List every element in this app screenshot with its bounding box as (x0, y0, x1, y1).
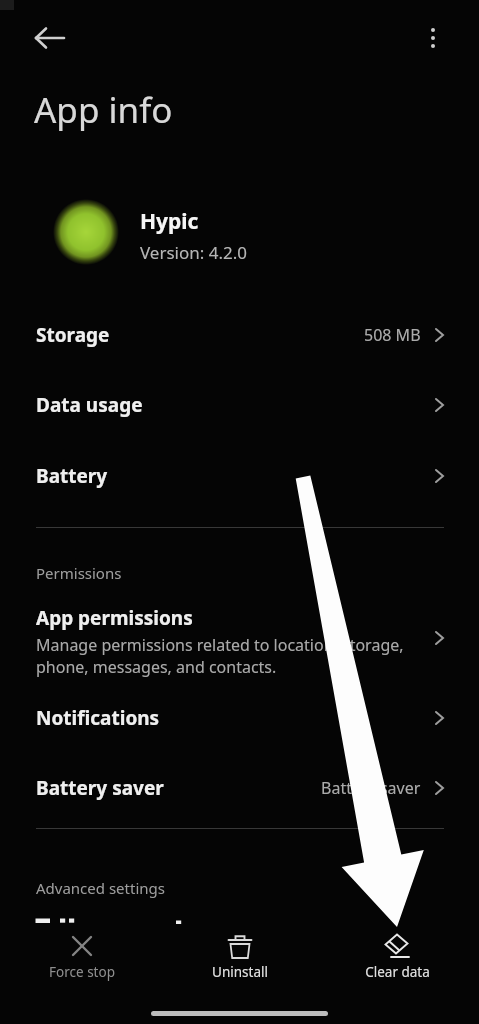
staticText: Version: 4.2.0 (140, 241, 248, 264)
staticText: Manage permissions related to location, … (36, 634, 404, 678)
staticText: Data usage (36, 392, 143, 418)
button[interactable]: Data usage (0, 370, 479, 440)
button[interactable] (22, 22, 78, 56)
button[interactable]: Storage (0, 300, 479, 370)
button[interactable]: Battery saver (0, 753, 479, 823)
staticText: 508 MB (364, 324, 421, 346)
staticText: Notifications (36, 705, 160, 731)
staticText: Hypic (140, 207, 199, 236)
staticText: Uninstall (212, 963, 268, 981)
staticText: Battery (36, 463, 108, 489)
button[interactable]: App permissions (0, 592, 479, 684)
button[interactable] (417, 20, 449, 56)
staticText: Clear data (365, 963, 430, 981)
staticText: Battery saver (321, 777, 421, 799)
button[interactable]: Uninstall (185, 922, 295, 988)
staticText: App info (34, 86, 173, 134)
staticText: Advanced settings (36, 878, 165, 898)
staticText: Force stop (49, 963, 115, 981)
button[interactable]: Notifications (0, 683, 479, 753)
button[interactable]: Clear data (342, 922, 452, 988)
button[interactable]: Force stop (27, 922, 137, 988)
staticText: App permissions (36, 605, 193, 631)
staticText: Permissions (36, 563, 122, 583)
staticText: Battery saver (36, 775, 164, 801)
staticText: Storage (36, 322, 110, 348)
button[interactable]: Battery (0, 441, 479, 511)
